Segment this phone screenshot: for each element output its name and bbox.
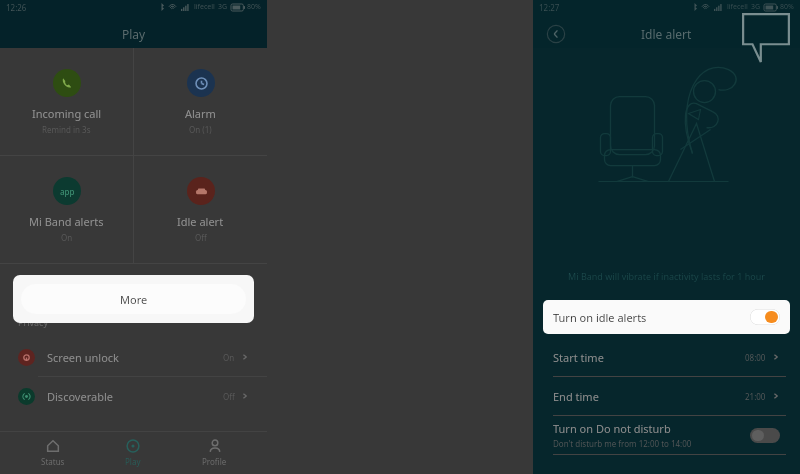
button[interactable]: Idle alert bbox=[134, 156, 267, 263]
button[interactable]: Do not disturb toggle bbox=[750, 428, 780, 443]
staticText: Play bbox=[122, 26, 146, 42]
button[interactable]: app bbox=[0, 156, 133, 263]
staticText: Mi Band will vibrate if inactivity lasts… bbox=[568, 270, 765, 282]
staticText: Turn on idle alerts bbox=[553, 310, 647, 325]
staticText: lifecell bbox=[194, 2, 215, 12]
staticText: On bbox=[223, 352, 235, 363]
button[interactable]: Turn on idle alerts bbox=[543, 300, 790, 334]
staticText: Incoming call bbox=[32, 106, 102, 121]
staticText: Turn on Do not disturb bbox=[553, 421, 671, 436]
button[interactable]: Screen unlock bbox=[0, 338, 267, 376]
staticText: 80% bbox=[780, 2, 794, 12]
button[interactable]: Turn on Do not disturb bbox=[533, 416, 800, 454]
button[interactable]: Discoverable bbox=[0, 377, 267, 415]
staticText: Don't disturb me from 12:00 to 14:00 bbox=[553, 438, 692, 449]
button[interactable]: Profile bbox=[182, 435, 247, 471]
staticText: Start time bbox=[553, 350, 604, 365]
staticText: 21:00 bbox=[745, 391, 766, 402]
staticText: 3G bbox=[218, 2, 228, 12]
staticText: Screen unlock bbox=[47, 350, 119, 365]
staticText: Alarm bbox=[185, 106, 216, 121]
staticText: On (1) bbox=[189, 124, 212, 135]
staticText: Off bbox=[223, 391, 235, 402]
staticText: Status bbox=[41, 456, 65, 467]
staticText: Remind in 3s bbox=[42, 124, 91, 135]
staticText: End time bbox=[553, 389, 599, 404]
staticText: Mi Band alerts bbox=[29, 214, 104, 229]
button[interactable]: Start time bbox=[533, 338, 800, 376]
button[interactable]: Back bbox=[545, 23, 567, 45]
staticText: Profile bbox=[202, 456, 227, 467]
button[interactable]: Status bbox=[21, 435, 85, 471]
staticText: 08:00 bbox=[745, 352, 766, 363]
staticText: Idle alert bbox=[641, 26, 692, 42]
button[interactable]: More bbox=[21, 284, 246, 314]
staticText: 3G bbox=[751, 2, 761, 12]
staticText: On bbox=[61, 232, 73, 243]
button[interactable]: Alarm bbox=[134, 48, 267, 155]
staticText: More bbox=[120, 292, 148, 307]
button[interactable]: End time bbox=[533, 377, 800, 415]
button[interactable]: Play bbox=[105, 435, 161, 471]
other: Callout bbox=[740, 12, 792, 64]
staticText: 12:27 bbox=[539, 2, 560, 13]
staticText: 12:26 bbox=[6, 2, 27, 13]
staticText: Play bbox=[125, 456, 141, 467]
staticText: Off bbox=[195, 232, 207, 243]
staticText: app bbox=[60, 186, 75, 197]
staticText: 80% bbox=[247, 2, 261, 12]
staticText: lifecell bbox=[727, 2, 748, 12]
staticText: Privacy bbox=[18, 316, 49, 328]
button[interactable]: Incoming call bbox=[0, 48, 133, 155]
staticText: Idle alert bbox=[177, 214, 224, 229]
staticText: Discoverable bbox=[47, 389, 113, 404]
button[interactable]: Toggle bbox=[750, 309, 780, 325]
